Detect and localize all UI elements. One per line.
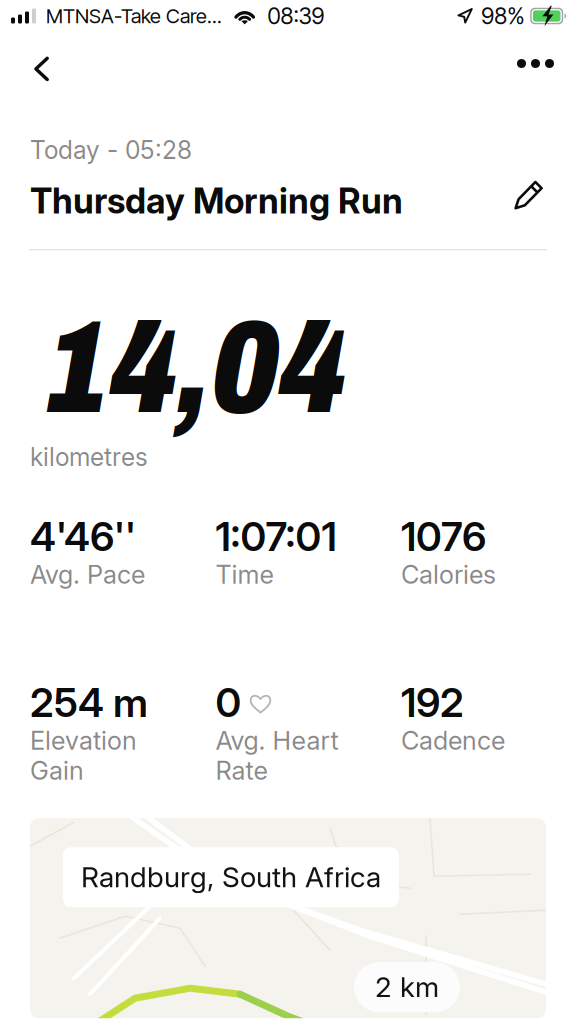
staticText: 1076 (401, 512, 486, 561)
button[interactable]: Edit workout name (514, 135, 544, 211)
staticText: Avg. Pace (30, 559, 145, 590)
staticText: kilometres (30, 442, 148, 472)
staticText: 0 (215, 678, 241, 727)
staticText: 4'46'' (30, 512, 136, 561)
button[interactable]: More options (503, 32, 576, 90)
staticText: 1:07:01 (215, 512, 336, 561)
staticText: 192 (401, 678, 464, 727)
staticText: Gain (30, 755, 84, 786)
staticText: 2 km (375, 970, 439, 1004)
staticText: Avg. Heart (215, 725, 338, 756)
staticText: Rate (215, 755, 267, 786)
staticText: Time (215, 559, 273, 590)
staticText: Elevation (30, 725, 137, 756)
staticText: 98% (481, 2, 524, 30)
button[interactable]: Back (0, 32, 65, 89)
staticText: 08:39 (267, 2, 324, 30)
staticText: Today - 05:28 (30, 135, 192, 165)
staticText: 254 m (30, 678, 148, 727)
staticText: Thursday Morning Run (30, 180, 403, 222)
staticText: Cadence (401, 725, 505, 756)
staticText: Randburg, South Africa (81, 860, 381, 894)
staticText: MTNSA-Take Care... (46, 4, 222, 28)
staticText: Calories (401, 559, 496, 590)
staticText: 14,04 (48, 297, 346, 439)
